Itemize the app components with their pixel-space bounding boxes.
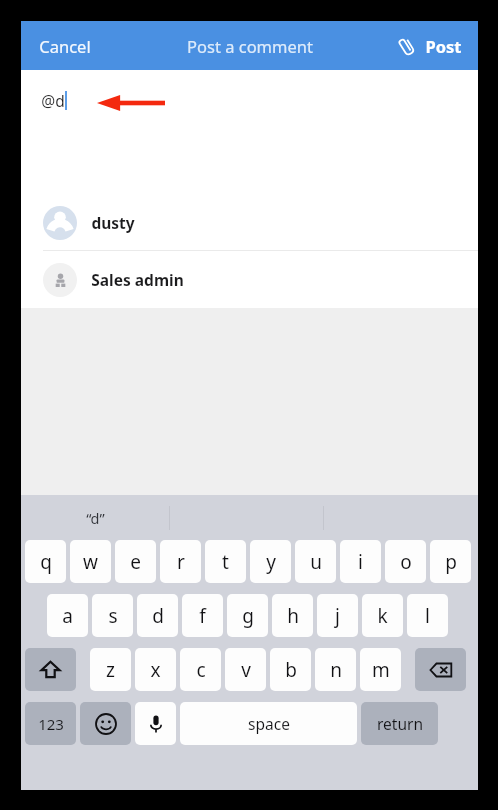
button[interactable]: s xyxy=(92,594,133,637)
staticText: a xyxy=(62,603,73,629)
button[interactable]: q xyxy=(25,540,66,583)
button[interactable]: return xyxy=(361,702,438,745)
staticText: @d xyxy=(41,90,65,111)
button[interactable]: o xyxy=(385,540,426,583)
staticText: x xyxy=(150,657,161,683)
button[interactable]: j xyxy=(317,594,358,637)
staticText: “d” xyxy=(86,508,105,528)
button[interactable]: Backspace xyxy=(415,648,466,691)
staticText: b xyxy=(285,657,297,683)
button[interactable]: b xyxy=(270,648,311,691)
staticText: i xyxy=(358,549,363,575)
staticText: z xyxy=(106,657,115,683)
button[interactable]: space xyxy=(180,702,357,745)
staticText: 123 xyxy=(38,714,64,734)
staticText: g xyxy=(242,603,254,629)
button[interactable]: x xyxy=(135,648,176,691)
staticText: h xyxy=(287,603,299,629)
staticText: v xyxy=(241,657,251,683)
staticText: o xyxy=(400,549,412,575)
staticText: q xyxy=(40,549,52,575)
staticText: y xyxy=(266,549,276,575)
button[interactable]: Cancel xyxy=(21,22,109,70)
staticText: j xyxy=(335,603,340,629)
staticText: s xyxy=(108,603,118,629)
button[interactable]: z xyxy=(90,648,131,691)
staticText: k xyxy=(377,603,388,629)
button[interactable]: f xyxy=(182,594,223,637)
button[interactable]: i xyxy=(340,540,381,583)
button[interactable]: k xyxy=(362,594,403,637)
button[interactable]: Attach file xyxy=(389,26,478,66)
staticText: space xyxy=(248,713,290,734)
button[interactable]: Shift xyxy=(25,648,76,691)
staticText: Sales admin xyxy=(91,269,184,290)
button[interactable]: l xyxy=(407,594,448,637)
staticText: return xyxy=(377,713,423,734)
button[interactable]: y xyxy=(250,540,291,583)
button[interactable]: dusty xyxy=(21,195,478,250)
button[interactable]: r xyxy=(160,540,201,583)
button[interactable]: u xyxy=(295,540,336,583)
button[interactable]: d xyxy=(137,594,178,637)
button[interactable]: Dictation xyxy=(135,702,176,745)
button[interactable]: p xyxy=(430,540,471,583)
button[interactable]: c xyxy=(180,648,221,691)
button[interactable]: h xyxy=(272,594,313,637)
staticText: dusty xyxy=(91,212,135,233)
staticText: t xyxy=(222,549,229,575)
button[interactable]: n xyxy=(315,648,356,691)
staticText: u xyxy=(310,549,322,575)
staticText: p xyxy=(445,549,457,575)
staticText: Cancel xyxy=(39,35,91,57)
button[interactable]: g xyxy=(227,594,268,637)
other: Attach file xyxy=(397,36,418,57)
staticText: d xyxy=(152,603,164,629)
staticText: n xyxy=(330,657,342,683)
button[interactable]: w xyxy=(70,540,111,583)
button[interactable]: 123 xyxy=(25,702,76,745)
button[interactable]: t xyxy=(205,540,246,583)
button[interactable]: Sales admin xyxy=(21,251,478,308)
staticText: Post a comment xyxy=(187,35,313,57)
button[interactable]: e xyxy=(115,540,156,583)
staticText: e xyxy=(130,549,141,575)
staticText: Post xyxy=(425,35,462,57)
staticText: m xyxy=(372,657,390,683)
staticText: r xyxy=(177,549,185,575)
button[interactable]: a xyxy=(47,594,88,637)
staticText: c xyxy=(196,657,206,683)
button[interactable]: Emoji xyxy=(80,702,131,745)
button[interactable]: v xyxy=(225,648,266,691)
button[interactable]: m xyxy=(360,648,401,691)
staticText: f xyxy=(199,603,206,629)
staticText: l xyxy=(425,603,430,629)
staticText: w xyxy=(83,549,98,575)
